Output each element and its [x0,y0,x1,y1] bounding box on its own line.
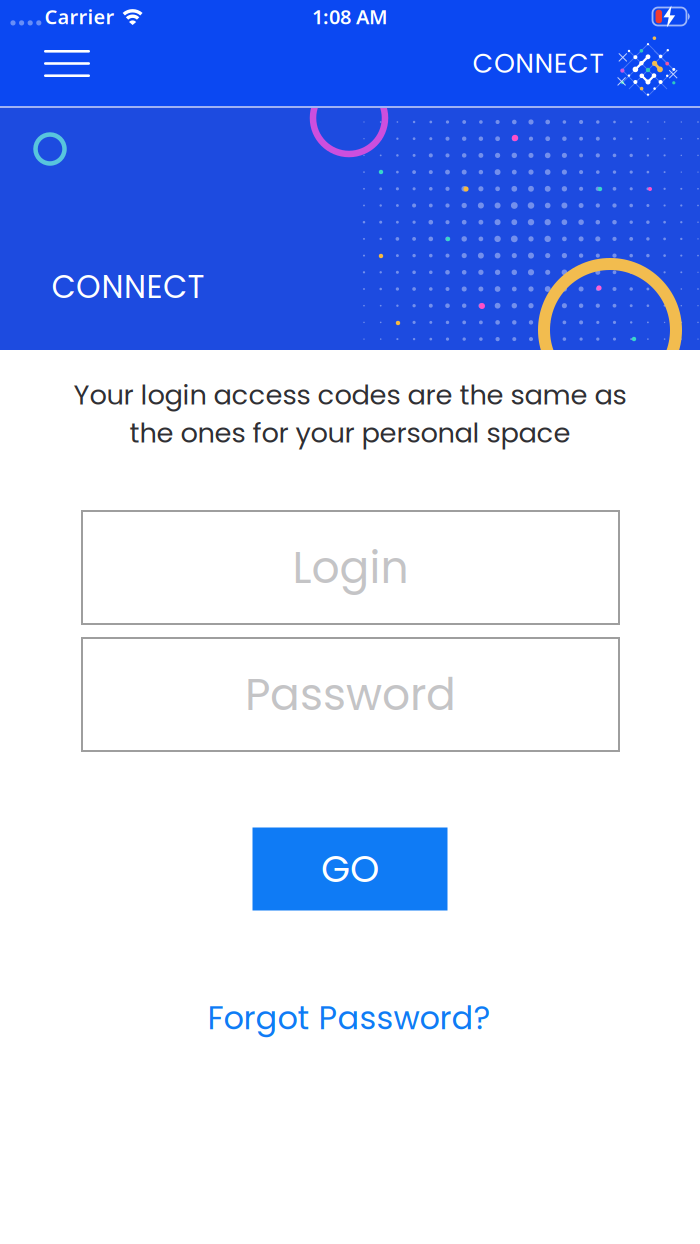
button[interactable]: Login [82,511,619,624]
staticText: Your login access codes are the same as [73,376,626,414]
staticText: GO [321,843,379,895]
staticText: Carrier [44,3,114,30]
staticText: Login [292,537,408,598]
staticText: CONNECT [51,265,204,309]
button[interactable]: Forgot Password? [207,996,490,1040]
button[interactable]: Password [82,638,619,751]
staticText: Forgot Password? [207,996,490,1040]
staticText: the ones for your personal space [129,414,570,452]
button[interactable]: Menu [40,43,94,83]
staticText: 1:08 AM [312,3,388,30]
staticText: CONNECT [473,45,603,82]
staticText: Password [245,664,456,725]
button[interactable]: GO [252,827,447,910]
